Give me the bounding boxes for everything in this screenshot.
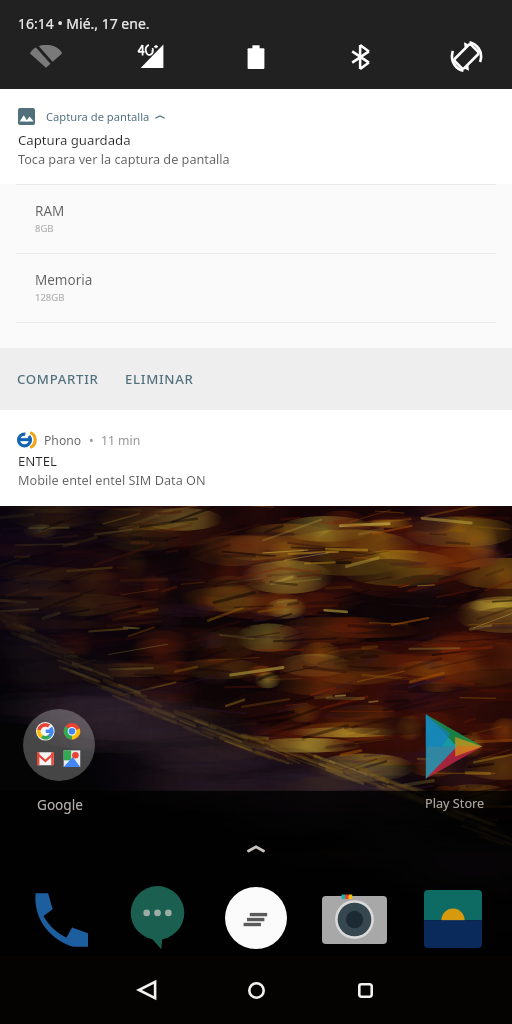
button[interactable]: Photos: [424, 890, 482, 948]
button[interactable]: Recents: [343, 968, 387, 1012]
staticText: ELIMINAR: [125, 370, 194, 388]
staticText: Play Store: [425, 794, 485, 811]
staticText: 8GB: [35, 222, 54, 235]
staticText: 128GB: [35, 291, 65, 304]
staticText: •: [89, 432, 94, 449]
button[interactable]: COMPARTIR: [17, 361, 99, 397]
button[interactable]: Phono: [0, 410, 512, 506]
button[interactable]: Home: [234, 968, 278, 1012]
staticText: COMPARTIR: [17, 370, 99, 388]
staticText: 16:14 • Mié., 17 ene.: [18, 14, 150, 33]
staticText: Phono: [44, 432, 82, 449]
staticText: Memoria: [35, 271, 93, 289]
button[interactable]: Captura de pantalla: [0, 89, 512, 184]
staticText: Captura guardada: [18, 131, 131, 149]
button[interactable]: Camera: [322, 893, 387, 944]
staticText: Mobile entel entel SIM Data ON: [18, 471, 206, 488]
button[interactable]: Google folder: [23, 709, 95, 781]
staticText: Toca para ver la captura de pantalla: [18, 150, 230, 167]
button[interactable]: RAM: [0, 185, 512, 253]
button[interactable]: Assistant: [225, 887, 287, 949]
staticText: 11 min: [101, 432, 141, 449]
button[interactable]: Back: [125, 968, 169, 1012]
button[interactable]: Phone: [31, 891, 88, 948]
button[interactable]: Memoria: [0, 254, 512, 322]
staticText: Google: [37, 795, 83, 814]
button[interactable]: All apps: [247, 843, 265, 855]
button[interactable]: ELIMINAR: [125, 361, 194, 397]
staticText: ENTEL: [18, 452, 57, 470]
button[interactable]: Play Store: [424, 713, 484, 780]
staticText: Captura de pantalla: [46, 109, 150, 124]
button[interactable]: Messages: [129, 886, 186, 950]
staticText: RAM: [35, 202, 65, 220]
